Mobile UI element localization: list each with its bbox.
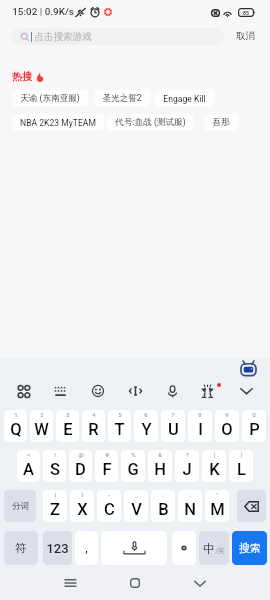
button[interactable]: 符	[4, 531, 38, 565]
button[interactable]: Engage Kill	[155, 90, 214, 107]
staticText: F	[102, 460, 112, 479]
staticText: 分词	[12, 501, 29, 512]
staticText: M	[210, 500, 225, 519]
staticText: G	[127, 460, 139, 479]
button[interactable]: Home	[118, 566, 152, 600]
staticText: B	[158, 500, 169, 519]
staticText: 15:02 | 0.9K/s	[12, 6, 74, 18]
button[interactable]: 2	[30, 410, 53, 442]
staticText: 3	[66, 411, 70, 418]
button[interactable]: 3	[56, 410, 79, 442]
staticText: H	[154, 460, 166, 479]
button[interactable]: 8	[188, 410, 212, 442]
button[interactable]: Emoji	[87, 380, 109, 402]
staticText: S	[50, 460, 60, 479]
button[interactable]: #	[95, 450, 118, 482]
staticText: )	[81, 491, 84, 498]
staticText: W	[34, 420, 49, 439]
button[interactable]: Collapse keyboard	[235, 380, 258, 402]
button[interactable]: Keyboard	[49, 380, 72, 402]
button[interactable]: *	[175, 450, 199, 482]
staticText: D	[75, 460, 86, 479]
button[interactable]: Backspace	[237, 490, 266, 522]
button[interactable]: Voice input	[162, 380, 183, 402]
button[interactable]: 分词	[4, 490, 36, 522]
staticText: R	[88, 420, 99, 439]
button[interactable]: NBA 2K23 MyTEAM	[12, 114, 104, 131]
button[interactable]: 5	[108, 410, 131, 442]
staticText: 吾那	[212, 117, 230, 128]
staticText: K	[209, 460, 220, 479]
button[interactable]: !	[43, 450, 66, 482]
button[interactable]: %	[121, 450, 145, 482]
button[interactable]: :	[151, 490, 175, 522]
staticText: C	[104, 500, 115, 519]
staticText: 点击搜索游戏	[34, 31, 92, 43]
button[interactable]: Period	[172, 531, 196, 565]
button[interactable]: )	[70, 490, 94, 522]
button[interactable]: 123	[43, 531, 72, 565]
button[interactable]: 7	[161, 410, 185, 442]
staticText: _	[135, 491, 138, 498]
staticText: 7	[171, 411, 175, 418]
staticText: 搜索	[239, 541, 261, 555]
button[interactable]: 中	[199, 531, 229, 565]
button[interactable]: (	[202, 450, 226, 482]
button[interactable]: Edit text	[124, 380, 147, 402]
button[interactable]: 代号:血战 (测试服)	[107, 114, 194, 131]
staticText: 代号:血战 (测试服)	[115, 117, 186, 128]
button[interactable]: 1	[4, 410, 27, 442]
button[interactable]: 圣光之誓2	[94, 90, 150, 107]
staticText: 2	[40, 411, 44, 418]
button[interactable]: 9	[215, 410, 239, 442]
button[interactable]: 4	[82, 410, 105, 442]
button[interactable]: Space	[101, 531, 167, 565]
button[interactable]: 点击搜索游戏	[11, 28, 224, 45]
button[interactable]: ;	[178, 490, 202, 522]
staticText: 6	[144, 411, 148, 418]
button[interactable]: &	[148, 450, 172, 482]
button[interactable]: _	[124, 490, 148, 522]
button[interactable]: 搜索	[232, 531, 267, 565]
staticText: #	[105, 451, 109, 458]
staticText: 热搜	[12, 70, 32, 83]
staticText: 1	[14, 411, 18, 418]
staticText: !	[54, 451, 56, 458]
staticText: 5	[118, 411, 122, 418]
button[interactable]: 0	[242, 410, 266, 442]
button[interactable]: )	[229, 450, 253, 482]
staticText: (	[54, 491, 57, 498]
staticText: O	[221, 420, 233, 439]
staticText: :	[162, 491, 164, 498]
staticText: J	[182, 460, 192, 479]
button[interactable]: 6	[134, 410, 158, 442]
staticText: ,	[85, 541, 88, 555]
button[interactable]: 吾那	[204, 114, 238, 131]
staticText: 123	[46, 541, 69, 556]
button[interactable]: ,	[75, 531, 98, 565]
button[interactable]: Back	[183, 566, 217, 600]
staticText: N	[184, 500, 196, 519]
button[interactable]: -	[97, 490, 121, 522]
staticText: T	[114, 420, 125, 439]
staticText: U	[168, 420, 179, 439]
button[interactable]: 取消	[232, 27, 259, 45]
button[interactable]: (	[43, 490, 67, 522]
staticText: 85	[243, 10, 249, 16]
staticText: 天谕 (东南亚服)	[20, 93, 80, 104]
button[interactable]: Celebrate	[196, 380, 219, 402]
staticText: Engage Kill	[163, 94, 206, 104]
staticText: V	[131, 500, 142, 519]
button[interactable]: Recent apps	[53, 566, 87, 600]
staticText: @	[78, 451, 84, 458]
staticText: 4	[92, 411, 96, 418]
staticText: 0	[252, 411, 256, 418]
button[interactable]: Apps	[13, 380, 35, 402]
button[interactable]: ~	[17, 450, 40, 482]
staticText: Q	[10, 420, 22, 439]
button[interactable]: @	[69, 450, 92, 482]
button[interactable]: "	[205, 490, 229, 522]
staticText: 取消	[236, 30, 255, 42]
staticText: L	[237, 460, 246, 479]
button[interactable]: 天谕 (东南亚服)	[12, 90, 88, 107]
